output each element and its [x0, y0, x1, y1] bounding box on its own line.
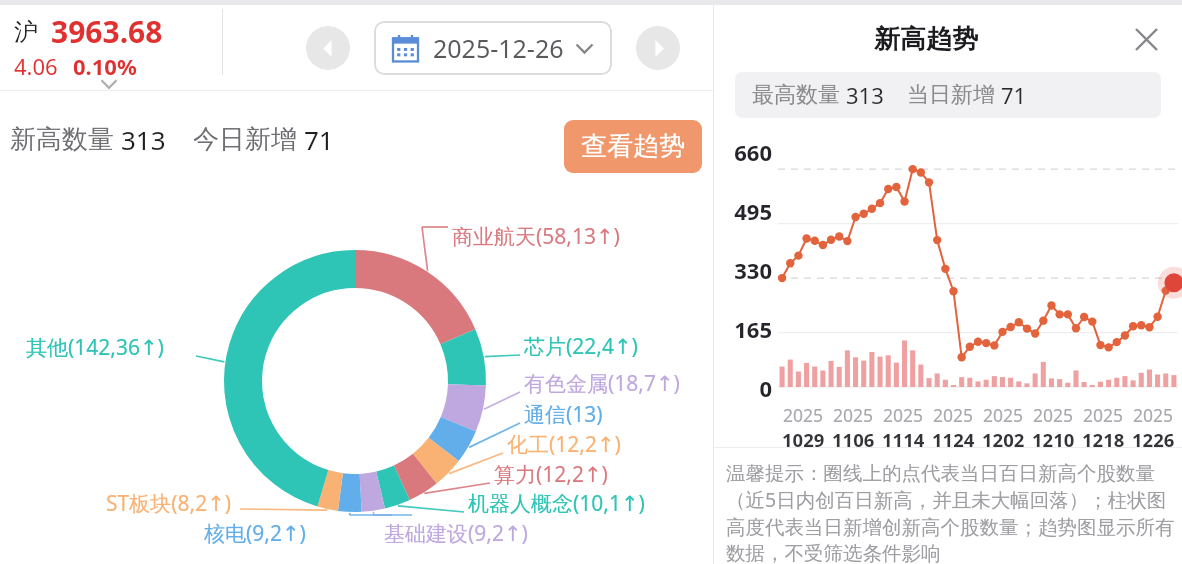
staticText: 1226	[1132, 427, 1175, 452]
staticText: 今日新增	[193, 123, 297, 156]
staticText: 新高数量	[10, 123, 114, 156]
staticText: 71	[1001, 80, 1027, 110]
staticText: 2025	[1083, 403, 1124, 427]
staticText: 化工(12,2↑)	[507, 430, 621, 459]
staticText: 1029	[782, 427, 825, 452]
button[interactable]: 查看趋势	[564, 120, 702, 173]
button[interactable]: Previous day	[306, 26, 350, 70]
staticText: 2025	[1133, 403, 1174, 427]
staticText: 2025	[983, 403, 1024, 427]
staticText: 330	[714, 255, 772, 285]
staticText: 算力(12,2↑)	[494, 460, 608, 489]
staticText: 1114	[882, 427, 925, 452]
staticText: 1106	[832, 427, 875, 452]
staticText: 2025	[1033, 403, 1074, 427]
staticText: 2025-12-26	[433, 31, 564, 65]
staticText: 基础建设(9,2↑)	[384, 519, 528, 548]
staticText: 165	[714, 314, 772, 344]
button[interactable]: Expand index	[94, 77, 124, 93]
staticText: 最高数量	[752, 81, 840, 109]
staticText: 2025	[833, 403, 874, 427]
staticText: 1202	[982, 427, 1025, 452]
staticText: 71	[304, 122, 334, 157]
staticText: 有色金属(18,7↑)	[524, 369, 680, 398]
staticText: 1124	[932, 427, 975, 452]
staticText: 商业航天(58,13↑)	[452, 222, 620, 251]
staticText: 2025	[883, 403, 924, 427]
staticText: 2025	[783, 403, 824, 427]
staticText: 0	[714, 373, 772, 403]
staticText: 313	[846, 80, 884, 110]
staticText: 新高趋势	[874, 23, 978, 56]
staticText: 3963.68	[51, 11, 163, 52]
button[interactable]: Close	[1126, 19, 1166, 59]
staticText: 313	[121, 122, 166, 157]
staticText: 4.06	[14, 51, 58, 81]
button[interactable]: Next day	[636, 26, 680, 70]
staticText: 通信(13)	[524, 400, 603, 429]
staticText: 查看趋势	[581, 130, 685, 163]
staticText: 核电(9,2↑)	[204, 519, 306, 548]
staticText: 沪	[14, 17, 38, 47]
staticText: ST板块(8,2↑)	[106, 489, 232, 518]
button[interactable]: 2025-12-26	[374, 21, 612, 75]
staticText: 2025	[933, 403, 974, 427]
staticText: 660	[714, 137, 772, 167]
staticText: 芯片(22,4↑)	[524, 332, 638, 361]
staticText: 1218	[1082, 427, 1125, 452]
staticText: 当日新增	[907, 81, 995, 109]
staticText: 其他(142,36↑)	[26, 333, 164, 362]
staticText: 温馨提示：圈线上的点代表当日百日新高个股数量（近5日内创百日新高，并且未大幅回落…	[726, 461, 1178, 564]
staticText: 0.10%	[73, 51, 137, 81]
staticText: 机器人概念(10,1↑)	[468, 489, 645, 518]
staticText: 1210	[1032, 427, 1075, 452]
staticText: 495	[714, 196, 772, 226]
